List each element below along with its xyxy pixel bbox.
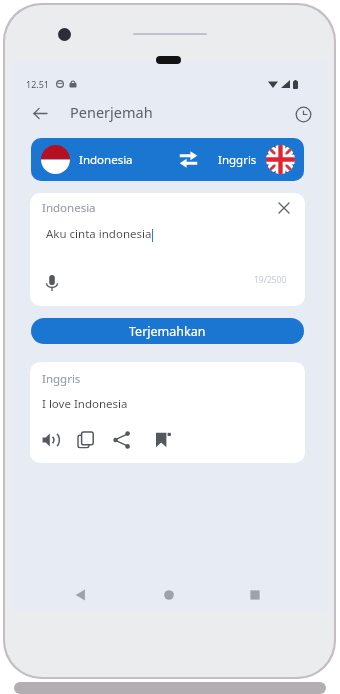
staticText: Aku cinta indonesia — [46, 226, 152, 242]
button[interactable]: Home — [158, 584, 180, 606]
button[interactable]: Voice input — [42, 273, 62, 293]
staticText: I love Indonesia — [42, 396, 128, 412]
staticText: Inggris — [42, 371, 81, 387]
button[interactable]: Swap languages — [179, 150, 198, 169]
staticText: Inggris — [218, 152, 257, 168]
button[interactable]: Back — [32, 105, 49, 122]
button[interactable]: Save — [152, 430, 172, 450]
button[interactable]: History — [294, 105, 313, 124]
button[interactable]: Copy — [76, 430, 96, 450]
staticText: Indonesia — [42, 200, 96, 216]
button[interactable]: Listen — [41, 430, 61, 450]
button[interactable]: Terjemahkan — [31, 318, 304, 344]
button[interactable]: Inggris — [218, 138, 295, 181]
staticText: Terjemahkan — [129, 323, 206, 340]
button[interactable]: Recents — [244, 584, 266, 606]
button[interactable]: Clear text — [275, 199, 293, 217]
staticText: 12.51 — [26, 78, 50, 90]
staticText: Penerjemah — [70, 102, 153, 122]
button[interactable]: Back — [70, 584, 92, 606]
staticText: Indonesia — [79, 152, 133, 168]
button[interactable]: Indonesia — [41, 138, 133, 181]
staticText: 19/2500 — [254, 274, 287, 286]
button[interactable]: Share — [112, 430, 132, 450]
